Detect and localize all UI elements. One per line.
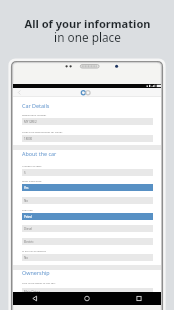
staticText: Number of seats <box>22 164 42 167</box>
staticText: Car Details <box>22 102 50 109</box>
button[interactable]: Electric <box>22 238 153 245</box>
staticText: Diesel <box>24 227 33 231</box>
staticText: About the car <box>22 150 57 157</box>
button[interactable]: Home <box>81 292 93 305</box>
button[interactable]: Diesel <box>22 225 153 232</box>
staticText: in one place <box>54 29 121 45</box>
button[interactable]: Yes <box>22 184 153 191</box>
staticText: All of your information <box>24 16 151 31</box>
staticText: Main Driver <box>24 290 40 294</box>
staticText: No <box>24 256 28 260</box>
button[interactable]: No <box>22 197 153 204</box>
staticText: Is the car an import? <box>22 249 47 252</box>
button[interactable]: MY12RE2 <box>22 118 153 125</box>
staticText: Yes <box>24 186 29 190</box>
staticText: Right hand drive <box>22 179 42 182</box>
staticText: 5 <box>24 171 26 175</box>
staticText: Fuel type <box>22 208 33 211</box>
button[interactable]: Main Driver <box>22 288 153 295</box>
staticText: Electric <box>24 240 34 244</box>
staticText: Who is the owner of the car? <box>22 281 56 284</box>
button[interactable]: Back <box>29 292 41 305</box>
staticText: Petrol <box>24 215 33 219</box>
button[interactable]: Recents <box>133 292 145 305</box>
button[interactable]: Back <box>14 88 24 97</box>
staticText: Registration number <box>22 113 47 116</box>
button[interactable]: No <box>22 254 153 261</box>
staticText: What's the approximate car value? <box>22 130 63 133</box>
staticText: No <box>24 199 28 203</box>
staticText: MY12RE2 <box>24 120 37 124</box>
button[interactable]: 18000 <box>22 135 153 142</box>
staticText: Ownership <box>22 269 50 276</box>
button[interactable]: Petrol <box>22 213 153 220</box>
staticText: 18000 <box>24 137 33 141</box>
